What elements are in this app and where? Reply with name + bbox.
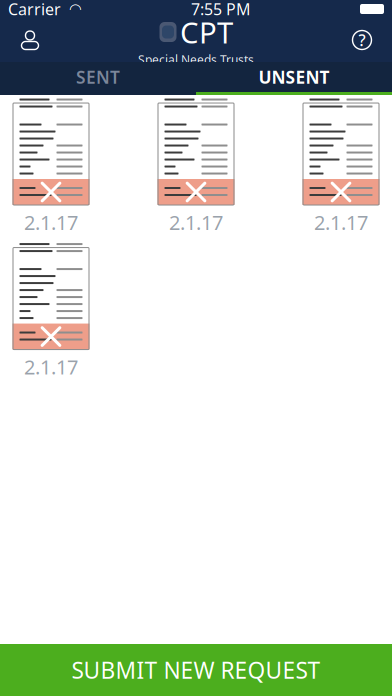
staticText: ? [358,29,365,51]
staticText: Special Needs Trusts [138,51,254,67]
button[interactable]: 2.1.17 [303,103,379,236]
button[interactable]: 2.1.17 [13,103,89,236]
staticText: ◠ [69,1,82,17]
staticText: 2.1.17 [24,209,78,236]
button[interactable]: SUBMIT NEW REQUEST [0,644,392,696]
button[interactable]: SENT [0,62,196,92]
button[interactable]: 2.1.17 [158,103,234,236]
button[interactable]: 2.1.17 [13,248,89,380]
staticText: CPT [180,13,233,52]
staticText: 7:55 PM [191,0,251,20]
staticText: 2.1.17 [169,209,223,236]
staticText: UNSENT [258,65,329,88]
button[interactable]: Help [342,23,382,57]
staticText: 2.1.17 [314,209,368,236]
staticText: SENT [76,65,120,88]
button[interactable]: UNSENT [196,62,392,92]
button[interactable]: Profile [10,23,50,57]
staticText: 2.1.17 [24,354,78,380]
staticText: Carrier [8,0,61,20]
staticText: SUBMIT NEW REQUEST [71,655,320,685]
